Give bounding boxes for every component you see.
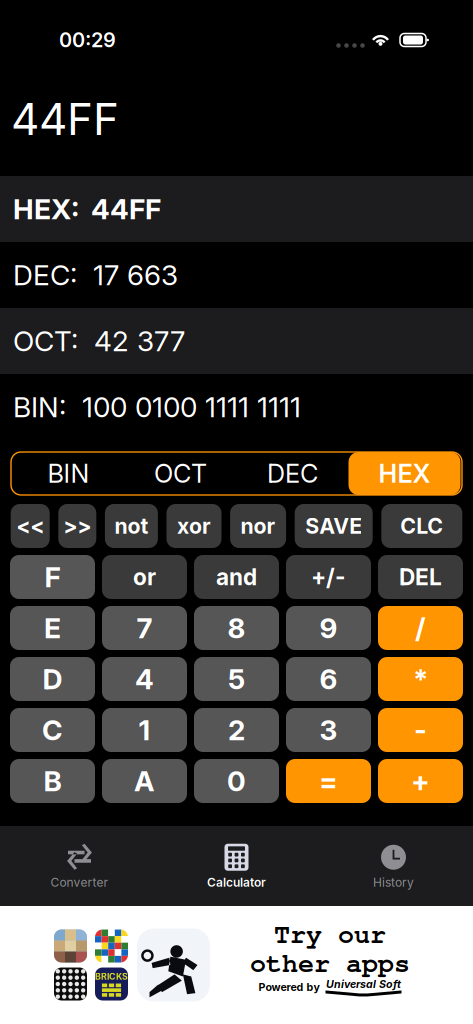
button[interactable]: 8 bbox=[194, 606, 279, 650]
staticText: OCT: 42 377 bbox=[13, 324, 185, 358]
staticText: Calculator bbox=[207, 875, 266, 890]
staticText: 7 bbox=[136, 611, 152, 645]
staticText: - bbox=[414, 713, 427, 747]
button[interactable]: = bbox=[286, 759, 371, 803]
staticText: = bbox=[319, 764, 338, 798]
staticText: Powered by bbox=[258, 980, 319, 993]
staticText: HEX: 44FF bbox=[13, 192, 161, 226]
staticText: xor bbox=[177, 513, 211, 539]
button[interactable]: 3 bbox=[286, 708, 371, 752]
staticText: E bbox=[44, 611, 61, 645]
staticText: or bbox=[133, 563, 156, 591]
staticText: C bbox=[42, 713, 63, 747]
button[interactable]: F bbox=[10, 555, 95, 599]
button[interactable]: 5 bbox=[194, 657, 279, 701]
button[interactable]: DEL bbox=[378, 555, 463, 599]
staticText: DEC: 17 663 bbox=[13, 258, 178, 292]
staticText: 3 bbox=[319, 713, 337, 747]
staticText: 8 bbox=[227, 611, 245, 645]
button[interactable]: 4 bbox=[102, 657, 187, 701]
button[interactable]: Converter bbox=[1, 836, 158, 896]
button[interactable]: BRICKS bbox=[0, 906, 473, 1024]
button[interactable]: xor bbox=[166, 504, 221, 548]
button[interactable]: / bbox=[378, 606, 463, 650]
staticText: other apps bbox=[250, 943, 410, 979]
staticText: F bbox=[44, 560, 60, 594]
button[interactable]: D bbox=[10, 657, 95, 701]
staticText: nor bbox=[241, 513, 276, 539]
button[interactable]: << bbox=[11, 504, 50, 548]
staticText: >> bbox=[63, 513, 91, 539]
staticText: SAVE bbox=[305, 513, 362, 539]
staticText: CLC bbox=[400, 513, 443, 539]
staticText: BRICKS bbox=[95, 971, 128, 982]
button[interactable]: E bbox=[10, 606, 95, 650]
staticText: 00:29 bbox=[59, 28, 116, 52]
button[interactable]: * bbox=[378, 657, 463, 701]
staticText: A bbox=[134, 764, 155, 798]
button[interactable]: OCT bbox=[124, 452, 236, 495]
staticText: 0 bbox=[227, 764, 246, 798]
button[interactable]: BIN bbox=[12, 452, 124, 495]
button[interactable]: History bbox=[315, 836, 472, 896]
button[interactable]: 2 bbox=[194, 708, 279, 752]
staticText: * bbox=[413, 662, 428, 696]
staticText: 9 bbox=[319, 611, 337, 645]
staticText: OCT bbox=[154, 458, 207, 489]
button[interactable]: + bbox=[378, 759, 463, 803]
staticText: D bbox=[42, 662, 62, 696]
button[interactable]: B bbox=[10, 759, 95, 803]
button[interactable]: 1 bbox=[102, 708, 187, 752]
staticText: Universal Soft bbox=[326, 977, 401, 990]
staticText: BIN bbox=[47, 458, 89, 489]
staticText: and bbox=[216, 563, 257, 591]
button[interactable]: and bbox=[194, 555, 279, 599]
button[interactable]: CLC bbox=[381, 504, 462, 548]
button[interactable]: 6 bbox=[286, 657, 371, 701]
staticText: DEL bbox=[399, 563, 442, 591]
button[interactable]: A bbox=[102, 759, 187, 803]
staticText: << bbox=[16, 513, 44, 539]
button[interactable]: DEC bbox=[236, 452, 348, 495]
button[interactable]: - bbox=[378, 708, 463, 752]
staticText: HEX bbox=[378, 458, 430, 489]
staticText: BIN: 100 0100 1111 1111 bbox=[13, 390, 301, 424]
staticText: Try our bbox=[274, 914, 386, 950]
button[interactable]: or bbox=[102, 555, 187, 599]
staticText: 6 bbox=[319, 662, 337, 696]
staticText: DEC bbox=[267, 458, 318, 489]
staticText: 5 bbox=[228, 662, 245, 696]
button[interactable]: nor bbox=[230, 504, 286, 548]
staticText: + bbox=[411, 764, 430, 798]
staticText: 1 bbox=[138, 713, 150, 747]
button[interactable]: SAVE bbox=[295, 504, 373, 548]
staticText: Converter bbox=[50, 875, 108, 890]
staticText: 4 bbox=[135, 662, 154, 696]
button[interactable]: HEX bbox=[348, 452, 460, 495]
button[interactable]: 9 bbox=[286, 606, 371, 650]
button[interactable]: +/- bbox=[286, 555, 371, 599]
staticText: / bbox=[415, 611, 426, 645]
button[interactable]: C bbox=[10, 708, 95, 752]
button[interactable]: >> bbox=[58, 504, 96, 548]
button[interactable]: 7 bbox=[102, 606, 187, 650]
staticText: 2 bbox=[228, 713, 245, 747]
staticText: B bbox=[43, 764, 61, 798]
button[interactable]: Calculator bbox=[158, 836, 315, 896]
button[interactable]: 0 bbox=[194, 759, 279, 803]
staticText: 44FF bbox=[11, 92, 119, 146]
staticText: History bbox=[373, 875, 414, 890]
staticText: +/- bbox=[311, 563, 346, 591]
button[interactable]: not bbox=[105, 504, 158, 548]
staticText: not bbox=[114, 513, 148, 539]
